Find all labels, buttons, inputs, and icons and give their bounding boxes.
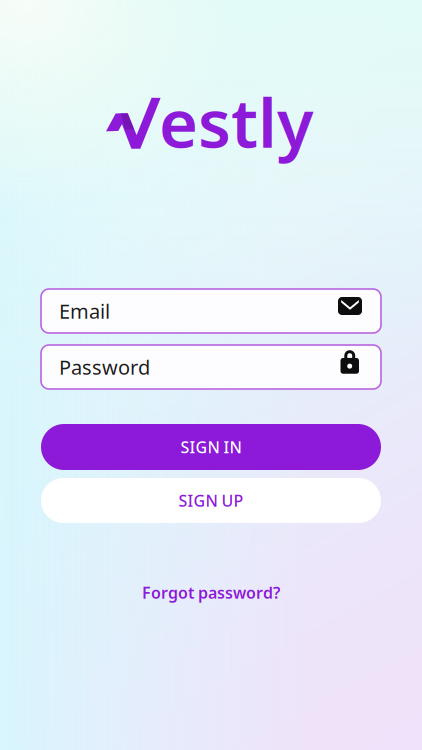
button[interactable]: SIGN UP — [41, 478, 381, 523]
staticText: Email — [59, 298, 110, 324]
staticText: Password — [59, 354, 150, 380]
button[interactable]: SIGN IN — [41, 424, 381, 470]
button[interactable]: Forgot password? — [142, 582, 280, 603]
staticText: Forgot password? — [142, 582, 280, 603]
staticText: SIGN UP — [178, 490, 243, 511]
staticText: estly — [159, 78, 314, 166]
staticText: SIGN IN — [180, 436, 241, 458]
